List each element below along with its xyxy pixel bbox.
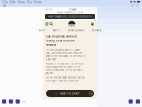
staticText: Because of the high heat, the surface is… xyxy=(46,63,84,74)
staticText: + xyxy=(93,8,95,11)
staticText: We use only high quality binchotan charc… xyxy=(46,76,85,82)
button[interactable]: www.chukan-bbq.com/products/grill xyxy=(45,14,95,19)
staticText: CHUKAN xyxy=(68,25,75,27)
button[interactable]: Search xyxy=(50,22,53,25)
staticText: www.chukan-bbq.com/products/grill xyxy=(47,15,92,18)
staticText: View xyxy=(17,0,25,4)
button[interactable]: STORE LOCATOR xyxy=(67,29,83,32)
staticText: SHOP xyxy=(38,29,44,32)
staticText: www.chukan-bbq.com xyxy=(57,11,83,14)
staticText: The charcoal grill has plenty of radiant… xyxy=(46,49,85,61)
button[interactable]: ABOUT xyxy=(52,29,59,32)
staticText: Edit xyxy=(10,0,16,4)
button[interactable]: ＋ ADD TO CART xyxy=(46,90,94,97)
staticText: Chukan xyxy=(69,8,76,11)
staticText: ＋ ADD TO CART xyxy=(55,92,80,95)
button[interactable]: SHOP xyxy=(38,29,44,32)
staticText: Go xyxy=(27,0,32,4)
staticText: stores xyxy=(45,8,52,11)
staticText: ABOUT xyxy=(52,29,59,32)
staticText: File xyxy=(2,0,8,4)
staticText: STORE LOCATOR xyxy=(67,29,83,32)
staticText: JOURNAL xyxy=(91,29,101,32)
button[interactable]: Cart xyxy=(91,22,97,26)
button[interactable]: JOURNAL xyxy=(91,29,101,32)
staticText: Help xyxy=(33,0,41,4)
button[interactable]: Menu xyxy=(43,22,50,25)
staticText: Can be grilled without losing heat from … xyxy=(46,35,77,46)
